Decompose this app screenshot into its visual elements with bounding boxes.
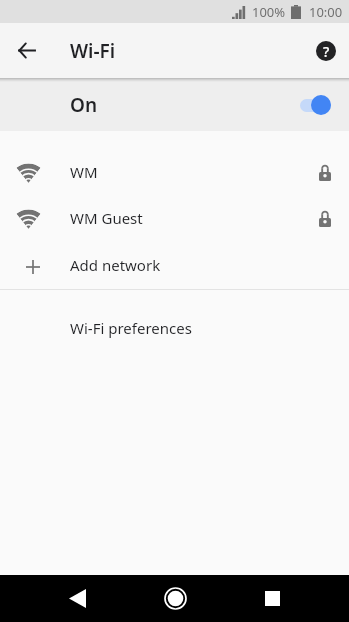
button[interactable]: Recent apps	[248, 575, 296, 622]
button[interactable]: WM	[0, 150, 349, 196]
button[interactable]: WM Guest	[0, 196, 349, 242]
staticText: On	[70, 92, 98, 118]
button[interactable]: Help	[305, 30, 346, 71]
staticText: 10:00	[309, 3, 343, 21]
staticText: 100%	[252, 3, 286, 21]
button[interactable]: Home	[151, 575, 199, 622]
button[interactable]: On	[0, 79, 349, 131]
button[interactable]: Navigate up	[6, 30, 47, 71]
button[interactable]: Back	[53, 575, 101, 622]
staticText: ?	[323, 42, 330, 61]
staticText: WM Guest	[70, 208, 143, 228]
staticText: WM	[70, 162, 98, 182]
staticText: Add network	[70, 255, 161, 275]
button[interactable]: Wi-Fi preferences	[0, 305, 349, 351]
button[interactable]: Add network	[0, 242, 349, 289]
staticText: Wi-Fi preferences	[70, 318, 192, 338]
staticText: Wi-Fi	[70, 38, 116, 64]
